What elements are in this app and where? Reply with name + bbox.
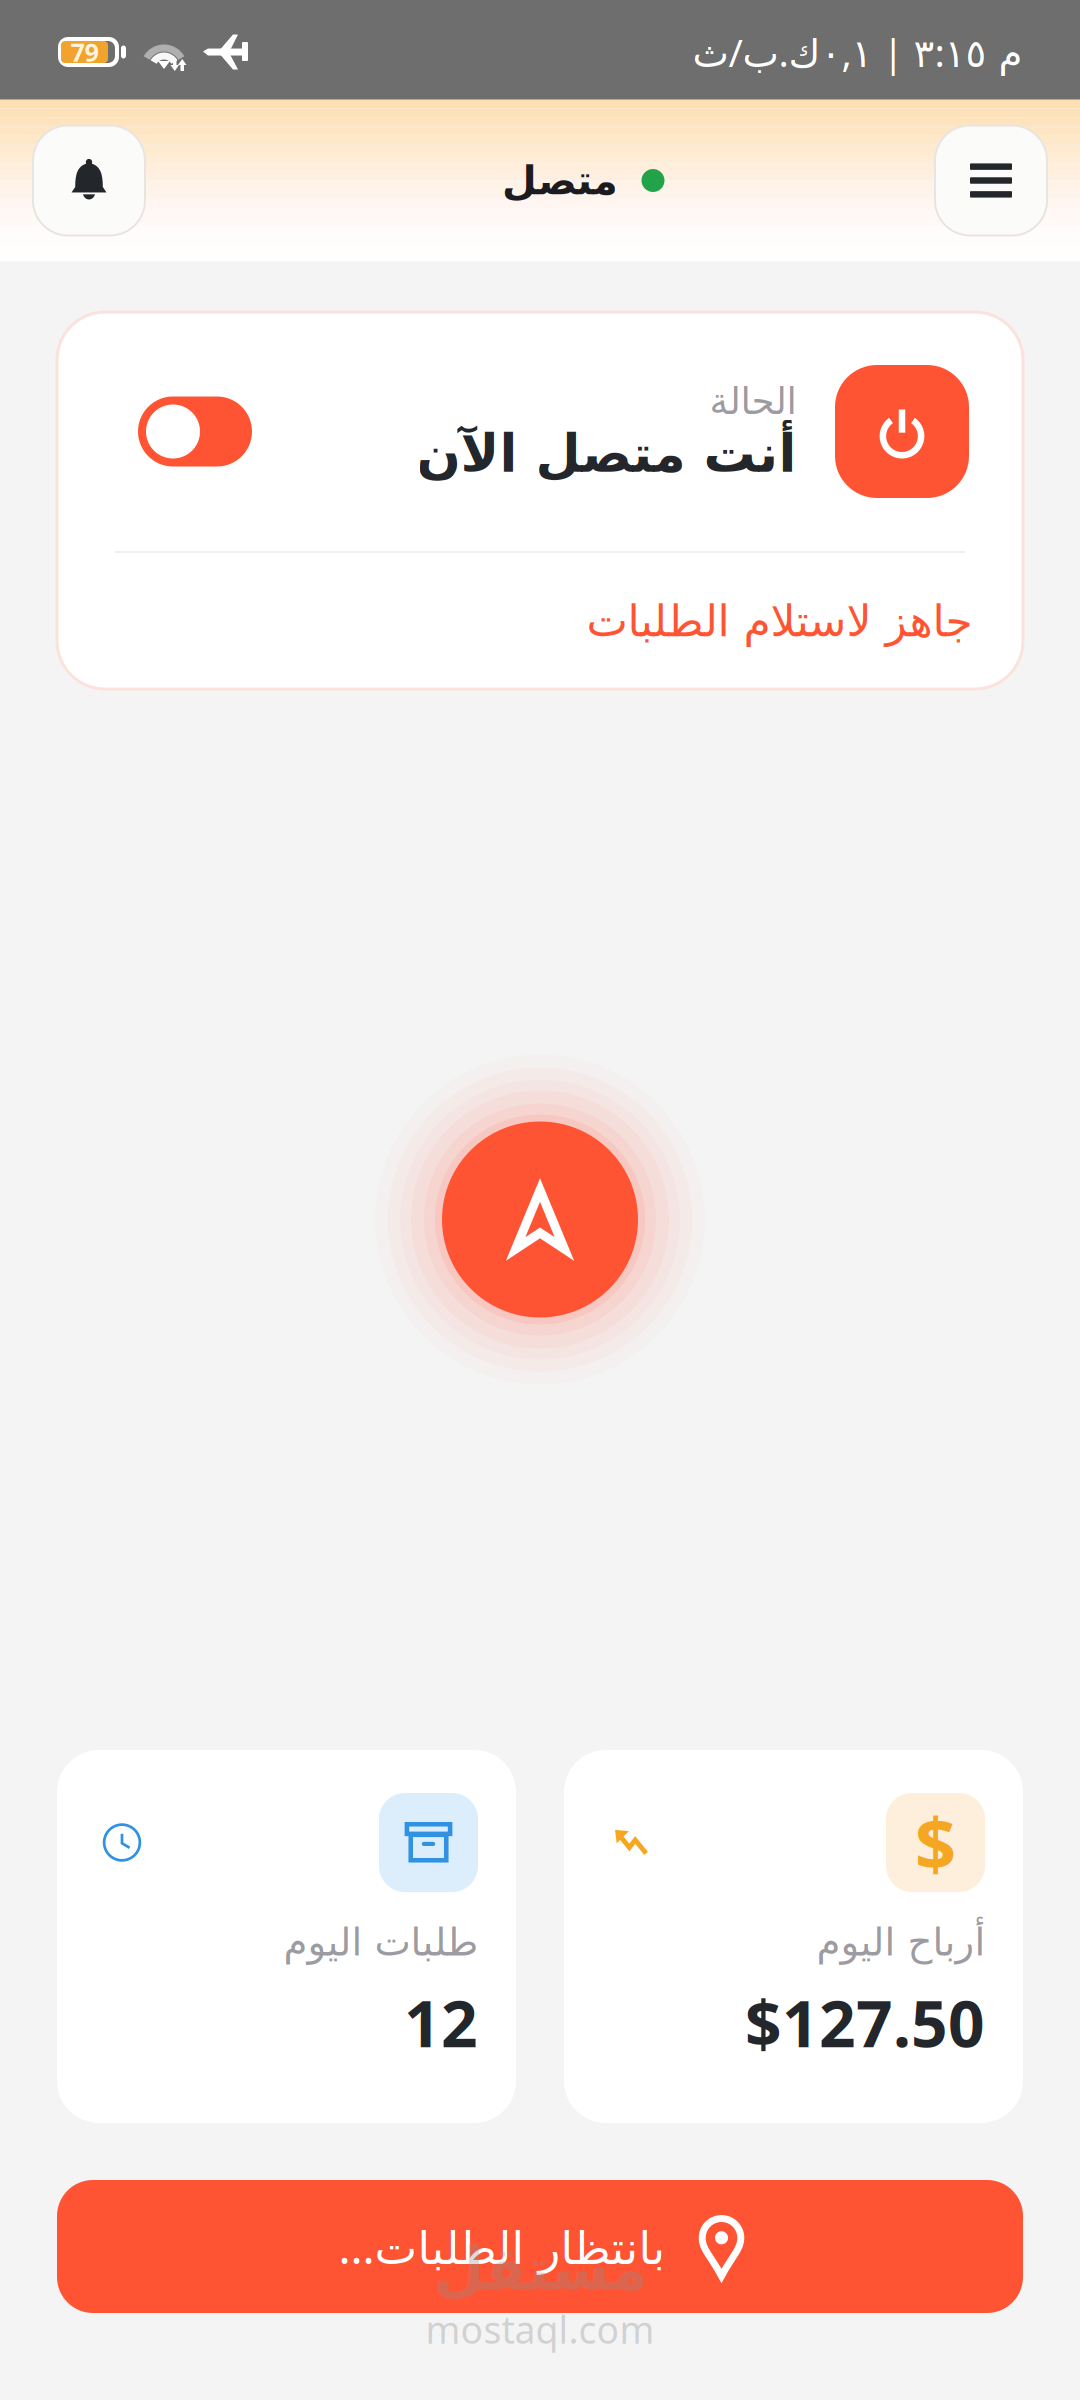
staticText: طلبات اليوم [283, 1920, 478, 1964]
button[interactable]: Menu [934, 124, 1048, 236]
staticText: 12 [404, 1980, 478, 2065]
staticText: متصل [501, 158, 617, 203]
staticText: م ٣:١٥ | ٠,١ك.ب/ث [692, 26, 1022, 78]
button[interactable]: بانتظار الطلبات... [57, 2180, 1023, 2313]
button[interactable]: Go offline [835, 365, 969, 498]
button[interactable]: Notifications [32, 124, 146, 236]
staticText: 79 [70, 35, 98, 69]
staticText: $ [915, 1795, 956, 1890]
staticText: بانتظار الطلبات... [338, 2216, 665, 2277]
staticText: أرباح اليوم [816, 1920, 985, 1964]
staticText: مستقل [433, 2236, 647, 2302]
button[interactable]: Availability toggle [138, 396, 252, 466]
staticText: mostaql.com [425, 2304, 654, 2354]
staticText: جاهز لاستلام الطلبات [586, 596, 972, 646]
staticText: أنت متصل الآن [416, 424, 796, 483]
staticText: $127.50 [745, 1980, 985, 2065]
staticText: الحالة [709, 380, 796, 422]
